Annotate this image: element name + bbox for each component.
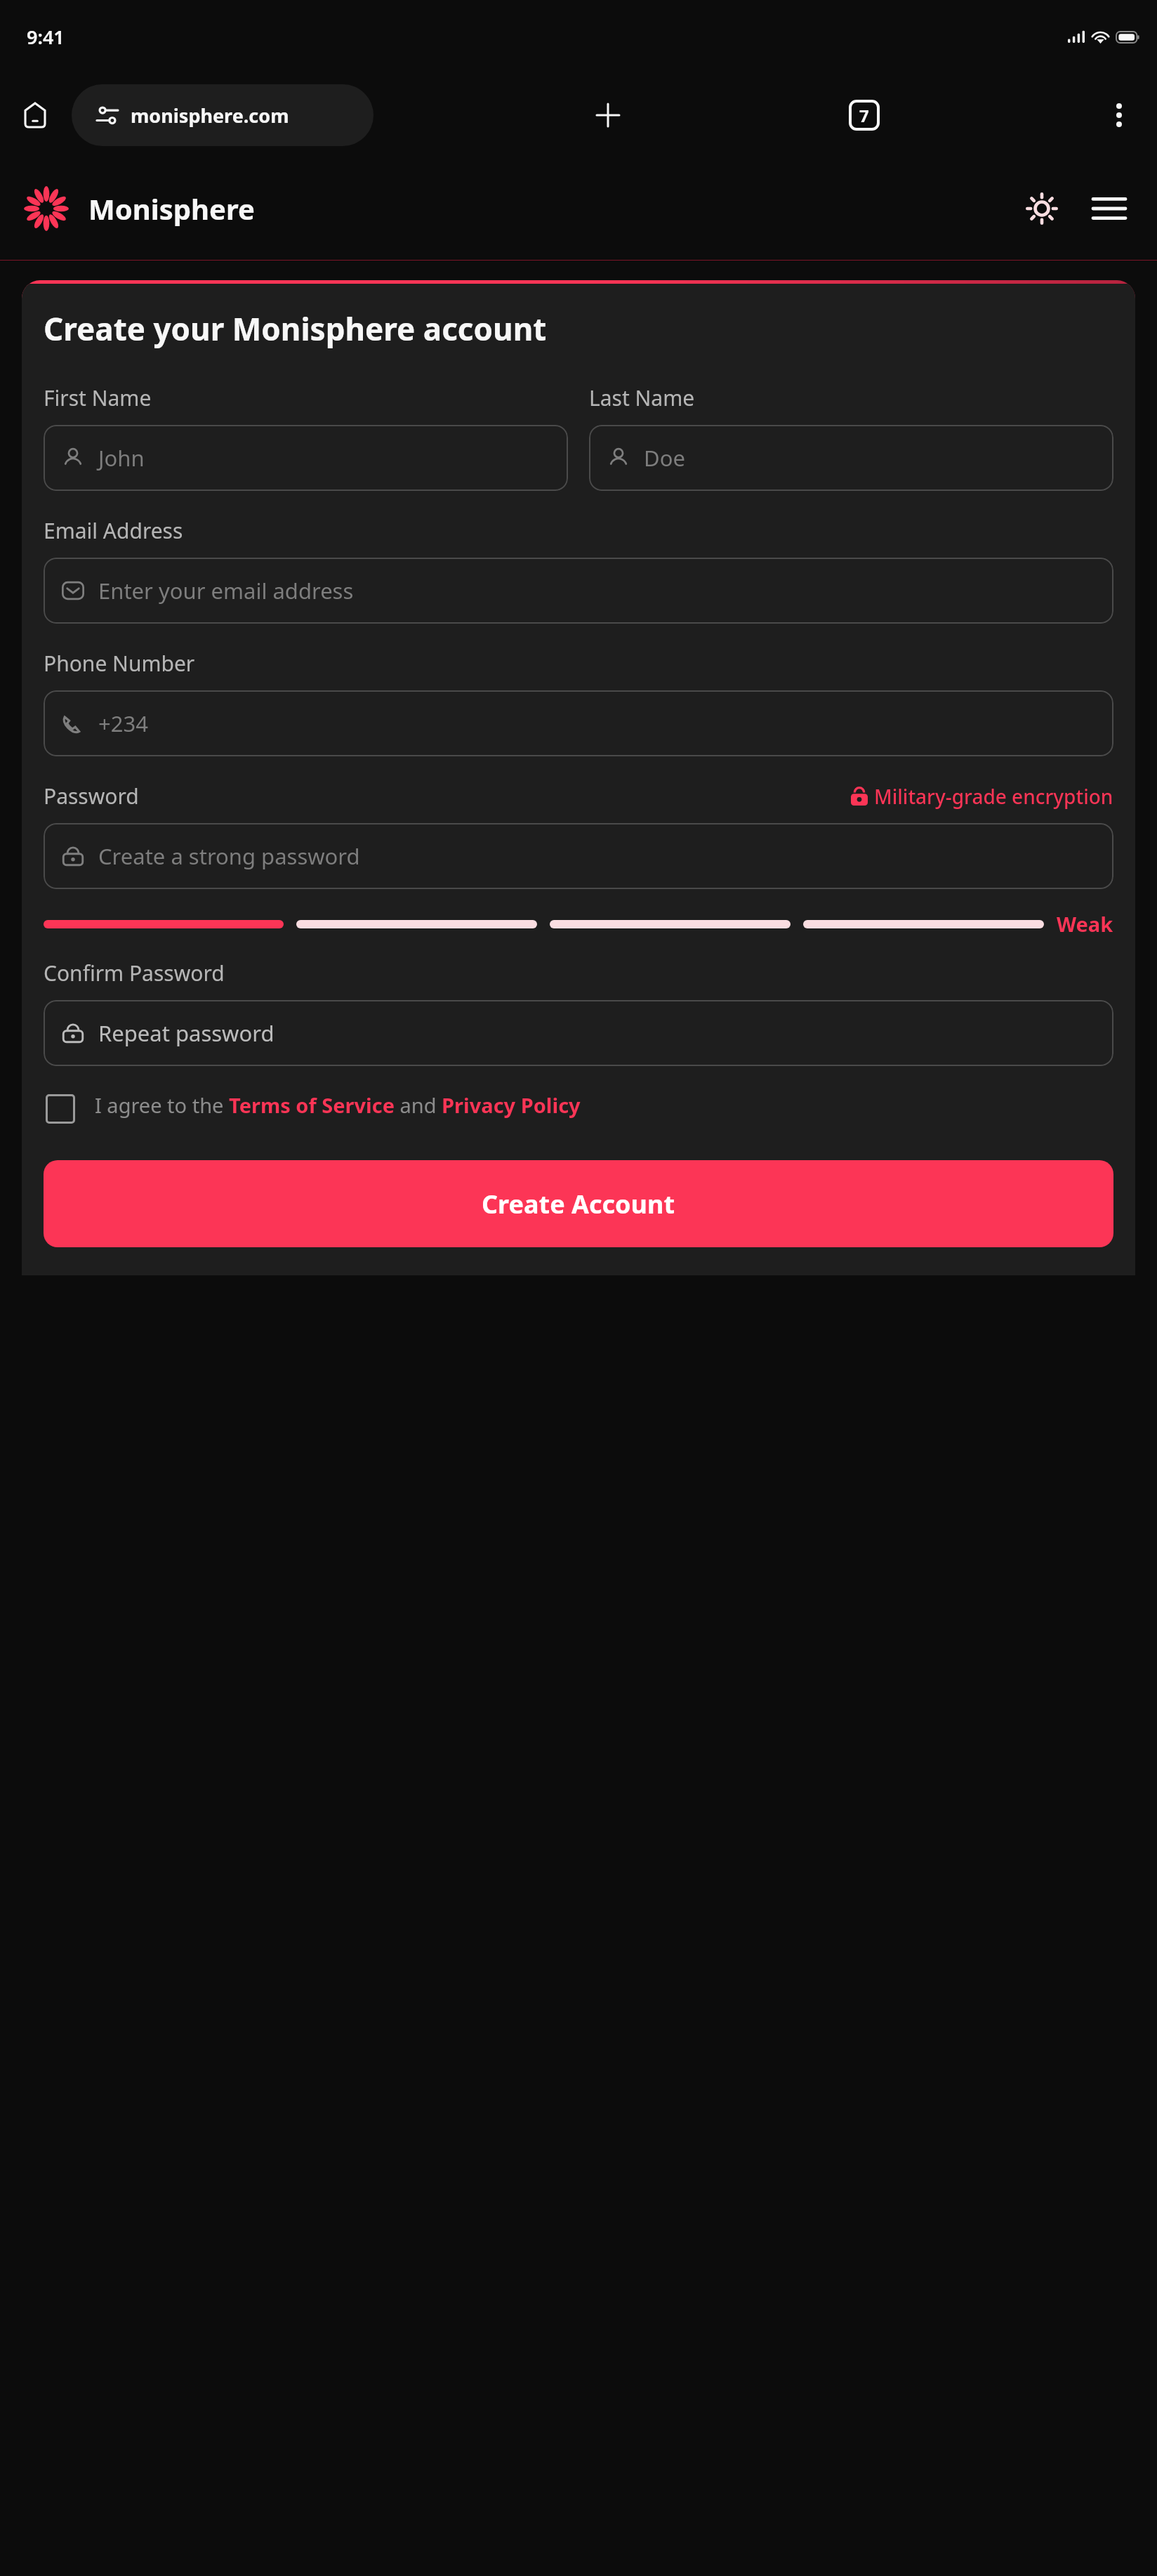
staticText: Doe — [644, 443, 685, 473]
staticText: First Name — [44, 383, 152, 412]
staticText: Create your Monisphere account — [44, 308, 547, 350]
button[interactable]: Toggle theme — [1017, 183, 1067, 234]
button[interactable]: +234 — [44, 690, 1113, 756]
button[interactable]: I agree to the Terms of Service and Priv… — [44, 1091, 1113, 1124]
staticText: Phone Number — [44, 649, 195, 678]
button[interactable]: Tabs — [843, 94, 885, 136]
staticText: Confirm Password — [44, 959, 225, 987]
button[interactable]: Create a strong password — [44, 823, 1113, 889]
staticText: Repeat password — [98, 1018, 275, 1048]
staticText: Email Address — [44, 516, 183, 545]
staticText: monisphere.com — [131, 103, 289, 129]
staticText: Last Name — [589, 383, 695, 412]
staticText: +234 — [98, 709, 148, 738]
button[interactable]: Repeat password — [44, 1000, 1113, 1066]
staticText: Weak — [1057, 910, 1113, 938]
button[interactable]: Menu — [1084, 183, 1135, 234]
staticText: Military-grade encryption — [874, 783, 1113, 810]
staticText: John — [98, 443, 145, 473]
button[interactable]: Enter your email address — [44, 558, 1113, 624]
button[interactable]: monisphere.com — [72, 84, 373, 146]
staticText: Enter your email address — [98, 576, 354, 605]
staticText: 9:41 — [27, 24, 65, 50]
staticText: I agree to the Terms of Service and Priv… — [95, 1091, 581, 1119]
button[interactable]: John — [44, 425, 568, 491]
staticText: Password — [44, 782, 139, 810]
button[interactable]: Home — [15, 96, 55, 135]
staticText: 7 — [859, 104, 869, 127]
staticText: Monisphere — [88, 190, 255, 228]
button[interactable]: More options — [1099, 96, 1139, 135]
staticText: Create Account — [482, 1187, 675, 1221]
staticText: Create a strong password — [98, 841, 360, 871]
button[interactable]: New tab — [587, 94, 629, 136]
button[interactable]: Doe — [589, 425, 1113, 491]
button[interactable]: Create Account — [44, 1160, 1113, 1247]
